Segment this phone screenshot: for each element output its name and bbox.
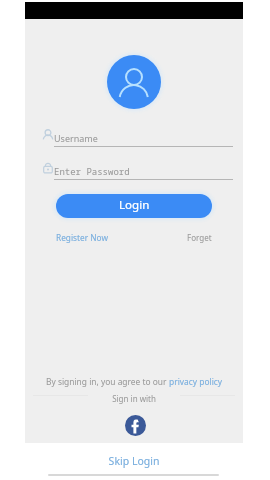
staticText: Sign in with bbox=[25, 393, 243, 404]
button[interactable]: Sign in with Facebook bbox=[125, 415, 146, 436]
button[interactable]: Login bbox=[56, 194, 212, 218]
staticText: By signing in, you agree to our bbox=[46, 376, 169, 387]
button[interactable]: privacy policy bbox=[169, 376, 223, 387]
staticText: Enter Password bbox=[54, 165, 130, 177]
button[interactable]: Skip Login bbox=[25, 454, 243, 468]
button[interactable]: Register Now bbox=[56, 232, 108, 243]
staticText: Username bbox=[54, 132, 98, 144]
button[interactable]: Forget bbox=[187, 232, 212, 243]
staticText: Login bbox=[119, 197, 150, 213]
button[interactable]: Profile avatar bbox=[107, 55, 161, 109]
